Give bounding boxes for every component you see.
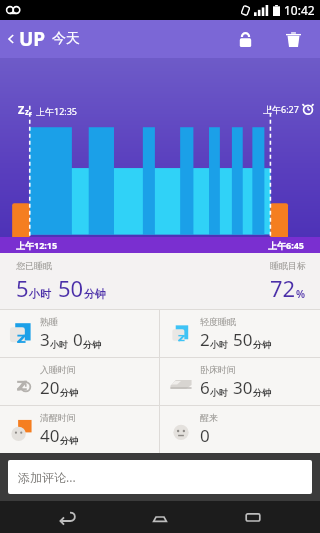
- staticText: 轻度睡眠: [200, 316, 236, 327]
- staticText: Z: [18, 102, 25, 117]
- staticText: 5: [16, 273, 29, 303]
- staticText: 分钟: [84, 287, 106, 301]
- staticText: 分钟: [253, 339, 271, 350]
- staticText: 分钟: [83, 339, 101, 350]
- staticText: 6: [200, 376, 210, 399]
- staticText: 醒来: [200, 412, 218, 423]
- staticText: 72: [270, 273, 296, 303]
- button[interactable]: 醒来: [160, 406, 320, 453]
- staticText: z: [25, 106, 29, 117]
- staticText: 上午12:15: [16, 239, 58, 251]
- button[interactable]: Back: [43, 501, 93, 533]
- staticText: 上午6:27: [263, 103, 299, 115]
- button[interactable]: Delete: [276, 22, 310, 56]
- staticText: 40: [40, 424, 60, 447]
- staticText: 分钟: [253, 387, 271, 398]
- button[interactable]: 轻度睡眠: [160, 310, 320, 357]
- button[interactable]: 您已睡眠: [0, 253, 320, 309]
- staticText: 3: [40, 328, 50, 351]
- button[interactable]: Home: [135, 501, 185, 533]
- staticText: %: [296, 287, 306, 301]
- staticText: 0: [200, 424, 210, 447]
- staticText: 2: [200, 328, 210, 351]
- staticText: 今天: [52, 30, 80, 48]
- staticText: 清醒时间: [40, 412, 76, 423]
- button[interactable]: UP: [0, 22, 88, 56]
- staticText: 分钟: [60, 435, 78, 446]
- staticText: 上午12:35: [36, 105, 78, 117]
- staticText: 分钟: [60, 387, 78, 398]
- staticText: 30: [233, 376, 253, 399]
- button[interactable]: Recents: [228, 501, 278, 533]
- staticText: 小时: [29, 287, 51, 301]
- button[interactable]: 入睡时间: [0, 358, 159, 405]
- button[interactable]: 清醒时间: [0, 406, 159, 453]
- button[interactable]: 卧床时间: [160, 358, 320, 405]
- staticText: 20: [40, 376, 60, 399]
- staticText: 睡眠目标: [270, 260, 306, 271]
- staticText: 0: [73, 328, 83, 351]
- staticText: 小时: [210, 387, 228, 398]
- button[interactable]: 添加评论...: [8, 460, 312, 494]
- staticText: 小时: [50, 339, 68, 350]
- staticText: 入睡时间: [40, 364, 76, 375]
- button[interactable]: Lock: [228, 22, 262, 56]
- staticText: 熟睡: [40, 316, 58, 327]
- staticText: 10:42: [284, 2, 315, 18]
- staticText: UP: [19, 26, 46, 52]
- staticText: 卧床时间: [200, 364, 236, 375]
- staticText: 添加评论...: [18, 469, 76, 485]
- staticText: 上午6:45: [268, 239, 304, 251]
- staticText: z: [29, 109, 32, 117]
- button[interactable]: 熟睡: [0, 310, 159, 357]
- staticText: 50: [58, 273, 84, 303]
- staticText: 50: [233, 328, 253, 351]
- staticText: 您已睡眠: [16, 260, 52, 271]
- staticText: 小时: [210, 339, 228, 350]
